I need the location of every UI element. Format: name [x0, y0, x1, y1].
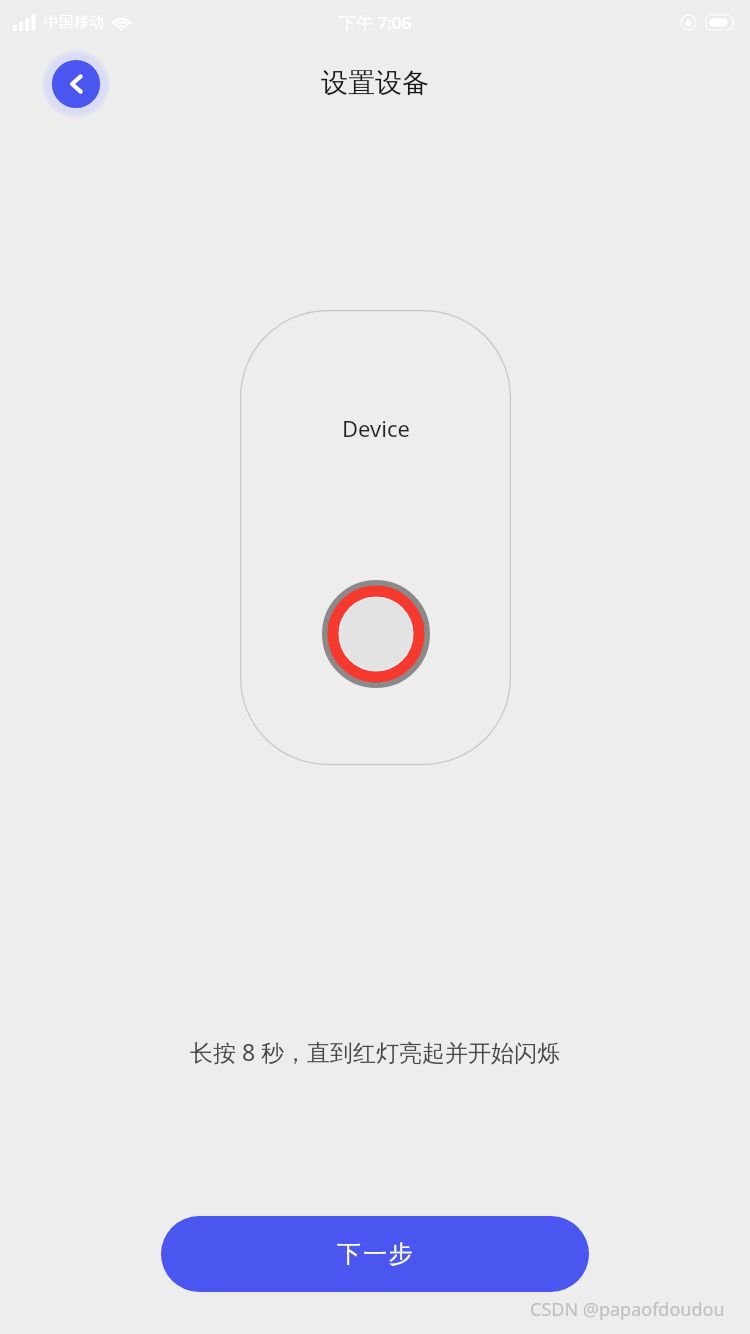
- staticText: 下午 7:06: [339, 11, 412, 34]
- staticText: 下一步: [336, 1239, 414, 1269]
- staticText: CSDN @papaofdoudou: [530, 1297, 725, 1322]
- staticText: Device: [342, 413, 410, 443]
- staticText: 设置设备: [321, 66, 429, 100]
- button[interactable]: 下一步: [161, 1216, 589, 1292]
- staticText: 长按 8 秒，直到红灯亮起并开始闪烁: [190, 1036, 561, 1067]
- staticText: 中国移动: [44, 13, 104, 32]
- button[interactable]: Back: [40, 48, 112, 120]
